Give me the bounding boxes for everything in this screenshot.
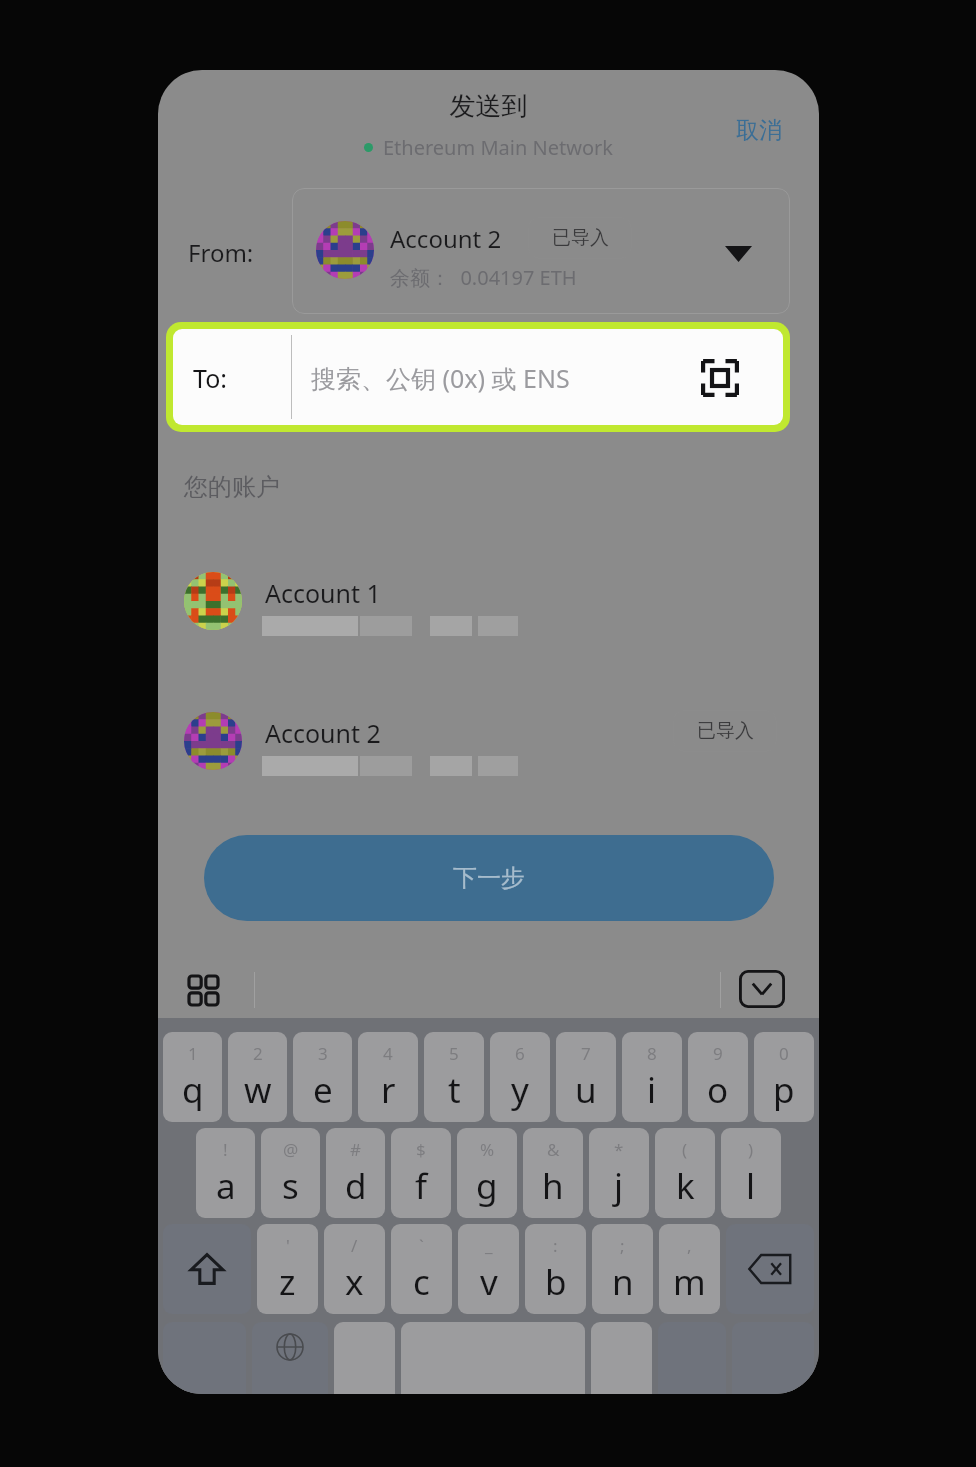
staticText: n [612, 1258, 634, 1306]
button[interactable]: * [589, 1128, 649, 1218]
button[interactable]: ( [655, 1128, 715, 1218]
staticText: 您的账户 [184, 472, 280, 502]
button[interactable] [334, 1322, 395, 1394]
staticText: @ [283, 1138, 299, 1161]
button[interactable]: ; [592, 1224, 653, 1314]
staticText: From: [188, 236, 254, 269]
button[interactable]: Backspace [726, 1224, 814, 1314]
staticText: e [313, 1066, 333, 1114]
button[interactable]: Account 1 [158, 562, 819, 690]
button[interactable]: 1 [163, 1032, 222, 1122]
button[interactable]: Enter [732, 1322, 814, 1394]
button[interactable]: / [324, 1224, 385, 1314]
staticText: o [707, 1066, 729, 1114]
staticText: Account 2 [265, 716, 381, 750]
staticText: 取消 [736, 116, 782, 145]
staticText: # [350, 1138, 361, 1161]
button[interactable]: _ [458, 1224, 519, 1314]
staticText: * [614, 1138, 624, 1161]
staticText: 8 [647, 1042, 657, 1065]
staticText: x [345, 1258, 364, 1306]
staticText: l [746, 1162, 756, 1210]
staticText: , [687, 1234, 692, 1257]
button[interactable]: Select account [716, 232, 760, 276]
staticText: p [773, 1066, 795, 1114]
button[interactable]: , [659, 1224, 720, 1314]
staticText: 余额： 0.04197 ETH [390, 264, 577, 291]
staticText: 6 [515, 1042, 525, 1065]
button[interactable]: Scan QR code [693, 351, 747, 405]
button[interactable]: 6 [490, 1032, 550, 1122]
button[interactable]: 3 [293, 1032, 352, 1122]
staticText: a [216, 1162, 236, 1210]
button[interactable]: Account 2 [158, 702, 819, 830]
button[interactable]: 取消 [710, 106, 808, 154]
staticText: 发送到 [158, 90, 819, 123]
button[interactable]: 2 [228, 1032, 287, 1122]
button[interactable]: ' [257, 1224, 318, 1314]
staticText: 下一步 [453, 863, 525, 893]
button[interactable]: ) [721, 1128, 781, 1218]
staticText: 2 [253, 1042, 263, 1065]
button[interactable]: $ [391, 1128, 451, 1218]
staticText: k [676, 1162, 695, 1210]
staticText: 0 [779, 1042, 789, 1065]
staticText: ) [748, 1138, 754, 1161]
staticText: q [182, 1066, 204, 1114]
staticText: / [351, 1234, 358, 1257]
staticText: w [244, 1066, 272, 1114]
staticText: Account 2 [390, 222, 502, 255]
button[interactable]: % [457, 1128, 517, 1218]
button[interactable]: 7 [556, 1032, 616, 1122]
button[interactable]: : [525, 1224, 586, 1314]
staticText: Ethereum Main Network [383, 134, 613, 161]
staticText: _ [485, 1234, 493, 1257]
button[interactable]: 8 [622, 1032, 682, 1122]
staticText: f [415, 1162, 428, 1210]
button[interactable]: 0 [754, 1032, 814, 1122]
staticText: To: [193, 361, 227, 395]
staticText: Account 1 [265, 576, 381, 610]
staticText: d [345, 1162, 367, 1210]
staticText: 3 [318, 1042, 328, 1065]
staticText: u [575, 1066, 597, 1114]
staticText: h [542, 1162, 564, 1210]
button[interactable]: 5 [424, 1032, 484, 1122]
button[interactable]: Symbols [163, 1322, 246, 1394]
staticText: ! [223, 1138, 228, 1161]
staticText: m [673, 1258, 706, 1306]
staticText: c [413, 1258, 430, 1306]
staticText: j [614, 1162, 624, 1210]
staticText: ` [419, 1234, 424, 1257]
button[interactable]: 4 [358, 1032, 418, 1122]
button[interactable]: Hide keyboard [736, 966, 788, 1012]
button[interactable]: Shift [163, 1224, 251, 1314]
staticText: ; [620, 1234, 625, 1257]
staticText: 9 [713, 1042, 723, 1065]
button[interactable]: To: [173, 329, 783, 425]
staticText: s [282, 1162, 299, 1210]
staticText: & [547, 1138, 560, 1161]
staticText: $ [416, 1138, 426, 1161]
button[interactable]: Keyboard apps [180, 967, 226, 1013]
button[interactable]: ` [391, 1224, 452, 1314]
staticText: % [480, 1138, 495, 1161]
button[interactable]: 9 [688, 1032, 748, 1122]
button[interactable]: ! [196, 1128, 255, 1218]
staticText: i [647, 1066, 657, 1114]
button[interactable]: 下一步 [204, 835, 774, 921]
staticText: ' [286, 1234, 290, 1257]
staticText: 搜索、公钥 (0x) 或 ENS [311, 361, 570, 395]
button[interactable]: & [523, 1128, 583, 1218]
button[interactable]: # [326, 1128, 385, 1218]
staticText: 已导入 [697, 719, 754, 743]
staticText: ( [682, 1138, 688, 1161]
button[interactable]: @ [261, 1128, 320, 1218]
staticText: 5 [449, 1042, 459, 1065]
button[interactable]: Account 2 [292, 188, 790, 314]
button[interactable] [591, 1322, 652, 1394]
staticText: 已导入 [552, 226, 609, 250]
button[interactable]: Language [252, 1322, 328, 1394]
